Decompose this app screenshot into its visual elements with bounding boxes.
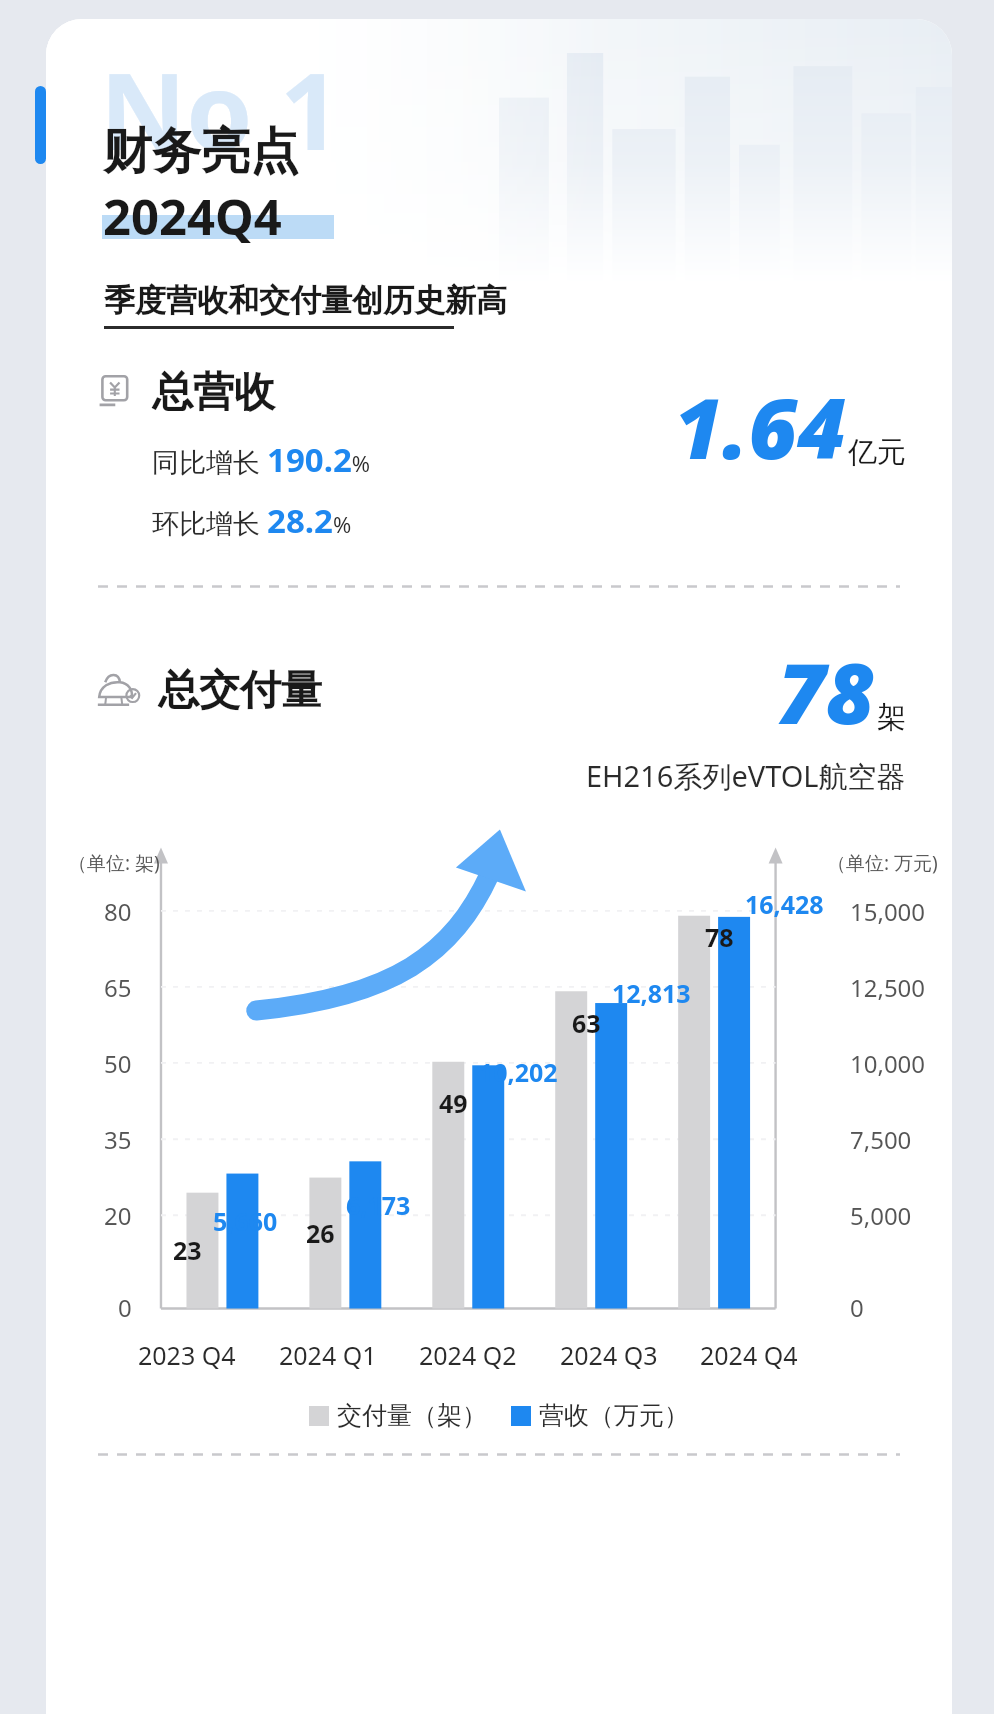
other: Total revenue — [96, 373, 136, 413]
staticText: 78 — [705, 920, 734, 954]
staticText: 35 — [104, 1123, 132, 1156]
button[interactable]: Total revenue — [96, 367, 906, 543]
staticText: 2024Q4 — [103, 183, 282, 250]
staticText: 交付量（架） — [337, 1400, 487, 1431]
staticText: 1.64 — [674, 369, 846, 483]
staticText: 80 — [104, 895, 132, 928]
staticText: 2024 Q3 — [560, 1338, 658, 1372]
staticText: 营收（万元） — [539, 1400, 689, 1431]
button[interactable]: Total deliveries — [96, 634, 906, 796]
staticText: 5,660 — [213, 1204, 278, 1238]
staticText: （单位: 万元) — [827, 850, 938, 876]
staticText: 65 — [104, 971, 132, 1004]
staticText: 12,813 — [612, 976, 691, 1010]
staticText: 49 — [439, 1086, 468, 1120]
staticText: 亿元 — [848, 434, 906, 471]
staticText: 0 — [850, 1291, 864, 1324]
staticText: 0 — [118, 1291, 132, 1324]
staticText: 16,428 — [745, 887, 824, 921]
staticText: EH216系列eVTOL航空器 — [586, 756, 906, 796]
staticText: 总营收 — [152, 367, 275, 419]
staticText: 6,173 — [346, 1188, 411, 1222]
staticText: 23 — [173, 1233, 202, 1267]
staticText: 2024 Q1 — [279, 1338, 377, 1372]
staticText: 50 — [104, 1047, 132, 1080]
staticText: 同比增长 190.2% — [152, 437, 371, 482]
staticText: 季度营收和交付量创历史新高 — [104, 281, 507, 320]
staticText: No 1 — [100, 37, 341, 181]
staticText: 财务亮点 — [103, 121, 299, 183]
staticText: 2024 Q2 — [419, 1338, 517, 1372]
staticText: 2023 Q4 — [138, 1338, 236, 1372]
staticText: 架 — [877, 699, 906, 736]
staticText: 63 — [572, 1006, 601, 1040]
staticText: 26 — [306, 1216, 335, 1250]
staticText: （单位: 架) — [68, 850, 160, 876]
staticText: 10,202 — [479, 1055, 558, 1089]
staticText: 5,000 — [850, 1199, 912, 1232]
staticText: 15,000 — [850, 895, 926, 928]
staticText: 20 — [104, 1199, 132, 1232]
staticText: 环比增长 28.2% — [152, 498, 352, 543]
staticText: 2024 Q4 — [700, 1338, 798, 1372]
staticText: 总交付量 — [158, 665, 322, 717]
staticText: 78 — [777, 634, 875, 748]
staticText: 10,000 — [850, 1047, 926, 1080]
staticText: 12,500 — [850, 971, 926, 1004]
other: Total deliveries — [96, 668, 142, 714]
staticText: 7,500 — [850, 1123, 912, 1156]
